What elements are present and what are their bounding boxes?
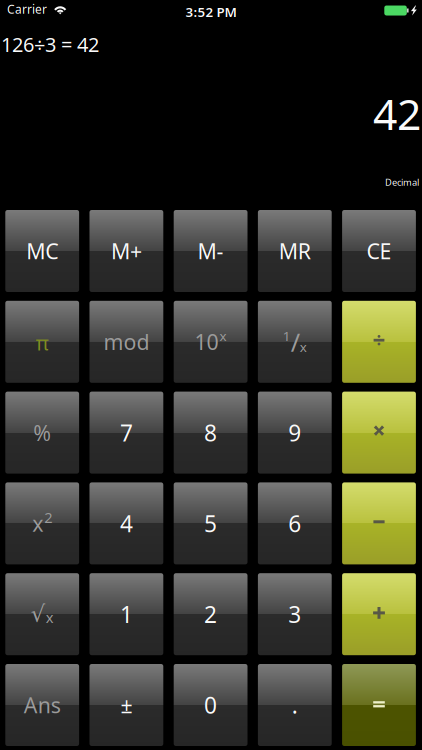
staticText: 8	[204, 417, 217, 448]
button[interactable]: mod	[89, 301, 163, 383]
staticText: 5	[204, 508, 217, 538]
staticText: x	[300, 338, 307, 356]
staticText: 126÷3 = 42	[1, 31, 99, 58]
button[interactable]: 9	[258, 392, 332, 474]
button[interactable]: 2	[174, 573, 247, 655]
staticText: ±	[120, 691, 132, 719]
staticText: MR	[279, 237, 311, 265]
staticText: 1	[120, 599, 133, 629]
button[interactable]: Subtract	[342, 482, 416, 564]
staticText: √	[31, 601, 45, 626]
button[interactable]: MR	[258, 210, 332, 292]
button[interactable]: Divide	[342, 301, 416, 383]
button[interactable]: 6	[258, 482, 332, 564]
staticText: 3	[288, 599, 301, 629]
staticText: 4	[120, 508, 133, 538]
button[interactable]: π	[5, 301, 79, 383]
button[interactable]: x	[5, 482, 79, 564]
staticText: 0	[204, 690, 217, 720]
staticText: 6	[288, 508, 301, 538]
button[interactable]: Equals	[342, 664, 416, 746]
staticText: 3:52 PM	[185, 3, 236, 21]
staticText: x	[220, 327, 227, 345]
staticText: M+	[111, 237, 142, 265]
button[interactable]: 1	[89, 573, 163, 655]
staticText: /	[291, 325, 300, 359]
staticText: 2	[204, 599, 217, 629]
staticText: mod	[103, 328, 149, 356]
button[interactable]: Ans	[5, 664, 79, 746]
staticText: x	[32, 509, 43, 537]
button[interactable]: 8	[174, 392, 247, 474]
button[interactable]: ±	[89, 664, 163, 746]
button[interactable]: 7	[89, 392, 163, 474]
staticText: Carrier	[7, 1, 47, 17]
button[interactable]: Multiply	[342, 392, 416, 474]
staticText: MC	[26, 237, 58, 265]
button[interactable]: M-	[174, 210, 247, 292]
staticText: Decimal	[385, 176, 419, 188]
button[interactable]: .	[258, 664, 332, 746]
staticText: x	[46, 607, 54, 627]
staticText: 42	[373, 85, 421, 142]
button[interactable]: 10	[174, 301, 247, 383]
staticText: π	[36, 329, 49, 356]
staticText: Ans	[24, 691, 61, 719]
staticText: CE	[366, 237, 391, 265]
staticText: 2	[44, 508, 52, 527]
button[interactable]: %	[5, 392, 79, 474]
button[interactable]: 5	[174, 482, 247, 564]
button[interactable]: M+	[89, 210, 163, 292]
staticText: M-	[198, 237, 224, 265]
button[interactable]: 4	[89, 482, 163, 564]
button[interactable]: CE	[342, 210, 416, 292]
staticText: 10	[195, 328, 219, 356]
button[interactable]: 0	[174, 664, 247, 746]
button[interactable]: Reciprocal	[258, 301, 332, 383]
button[interactable]: 3	[258, 573, 332, 655]
staticText: %	[33, 418, 51, 447]
button[interactable]: Square root	[5, 573, 79, 655]
button[interactable]: MC	[5, 210, 79, 292]
staticText: 9	[288, 417, 301, 448]
button[interactable]: Add	[342, 573, 416, 655]
staticText: 1	[283, 327, 291, 345]
staticText: .	[292, 690, 298, 720]
staticText: 7	[120, 417, 133, 448]
